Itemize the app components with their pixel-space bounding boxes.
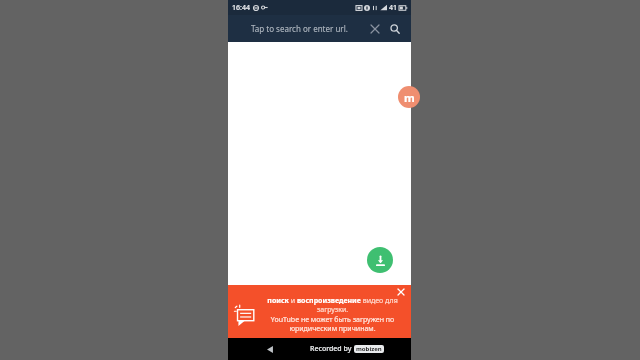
button[interactable]: Clear	[365, 19, 385, 39]
staticText: поиск и воспроизведение видео для загруз…	[262, 296, 403, 314]
staticText: YouTube не может быть загружен по юридич…	[262, 315, 403, 333]
staticText: Recorded by	[310, 344, 354, 354]
button[interactable]: Search	[385, 19, 405, 39]
button[interactable]: поиск и воспроизведение видео для загруз…	[228, 285, 411, 338]
button[interactable]: Back	[262, 341, 278, 357]
staticText: 41	[389, 3, 398, 13]
button[interactable]: Dismiss	[395, 286, 407, 298]
staticText: 16:44	[232, 3, 250, 13]
staticText: mobizen	[356, 345, 382, 353]
button[interactable]: Floating widget	[398, 86, 420, 108]
staticText: Tap to search or enter url.	[251, 23, 348, 34]
staticText: m	[404, 90, 415, 105]
button[interactable]: Tap to search or enter url.	[234, 15, 365, 42]
button[interactable]: Download	[367, 247, 393, 273]
